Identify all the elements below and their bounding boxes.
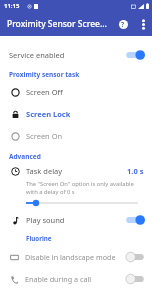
button[interactable]: Disable in landscape mode <box>0 246 152 268</box>
button[interactable]: Screen On <box>0 125 152 147</box>
staticText: 11:15 <box>4 2 20 10</box>
button[interactable]: Screen Off <box>0 81 152 103</box>
staticText: Proximity sensor task <box>9 70 80 79</box>
button[interactable]: Enable during a call <box>0 268 152 290</box>
staticText: Disable in landscape mode <box>25 252 116 262</box>
button[interactable]: Fluorine <box>0 230 152 246</box>
staticText: Service enabled <box>9 50 65 60</box>
staticText: Play sound <box>26 215 65 225</box>
button[interactable]: Help <box>116 17 130 31</box>
button[interactable]: Screen Lock <box>0 103 152 125</box>
staticText: ? <box>121 20 125 29</box>
button[interactable]: Service enabled <box>0 46 152 64</box>
staticText: Fluorine <box>26 234 52 242</box>
button[interactable]: Play sound <box>0 210 152 230</box>
button[interactable]: Task delay <box>0 163 152 210</box>
staticText: Advanced <box>9 152 41 161</box>
staticText: Screen Lock <box>26 109 71 119</box>
staticText: Screen Off <box>26 87 63 97</box>
staticText: The "Screen On" option is only available… <box>26 180 142 196</box>
button[interactable]: More options <box>136 17 150 31</box>
staticText: 1.0 s <box>127 166 144 176</box>
staticText: Task delay <box>26 166 63 176</box>
staticText: Enable during a call <box>25 274 92 284</box>
staticText: Screen On <box>26 131 63 141</box>
staticText: Proximity Sensor Screen… <box>7 18 112 30</box>
